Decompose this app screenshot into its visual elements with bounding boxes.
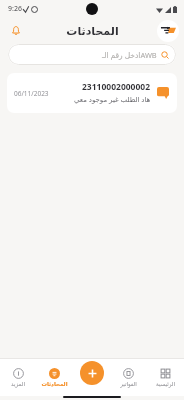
button[interactable]: المزيد xyxy=(0,358,36,396)
staticText: ادخل رقم الـAWB xyxy=(102,50,157,60)
staticText: 06/11/2023 xyxy=(14,89,49,98)
staticText: 9:26 xyxy=(8,4,22,14)
staticText: المحادثات xyxy=(66,25,119,38)
staticText: 23110002000002 xyxy=(82,81,151,93)
staticText: الفواتير xyxy=(120,381,137,387)
button[interactable]: Notifications xyxy=(6,21,26,41)
staticText: الرئيسية xyxy=(156,381,175,387)
button[interactable]: Open chat xyxy=(155,85,171,101)
button[interactable]: ادخل رقم الـAWB xyxy=(8,44,176,65)
button[interactable]: 06/11/2023 xyxy=(7,73,177,113)
staticText: هاد الطلب غير موجود معي xyxy=(74,95,151,105)
button[interactable]: المحادثات xyxy=(36,358,73,396)
button[interactable]: Logo xyxy=(157,20,179,42)
staticText: المزيد xyxy=(11,381,25,387)
button[interactable]: Add xyxy=(80,361,104,385)
button[interactable]: الفواتير xyxy=(110,358,147,396)
staticText: المحادثات xyxy=(41,381,68,387)
button[interactable]: الرئيسية xyxy=(147,358,184,396)
